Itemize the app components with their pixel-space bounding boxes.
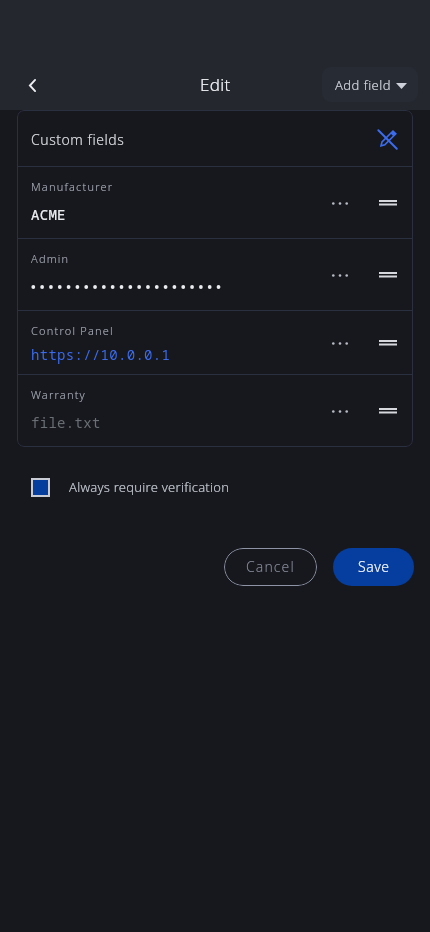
button[interactable]: Manufacturer [17, 167, 413, 238]
button[interactable]: More options [323, 394, 357, 428]
button[interactable]: Always require verification [17, 468, 230, 506]
staticText: Admin [31, 251, 70, 266]
staticText: Edit [200, 73, 231, 96]
staticText: Control Panel [31, 323, 114, 338]
button[interactable]: Add field [322, 67, 418, 102]
button[interactable]: More options [323, 258, 357, 292]
button[interactable]: Admin [17, 239, 413, 310]
staticText: https://10.0.0.1 [31, 345, 171, 364]
button[interactable]: Reorder [371, 394, 405, 428]
staticText: Warranty [31, 387, 86, 402]
button[interactable]: More options [323, 186, 357, 220]
button[interactable]: Control Panel [17, 311, 413, 374]
staticText: Manufacturer [31, 179, 114, 194]
button[interactable]: Reorder [371, 326, 405, 360]
button[interactable]: Reorder [371, 258, 405, 292]
staticText: Cancel [246, 557, 295, 576]
button[interactable]: Back [13, 66, 51, 104]
staticText: Always require verification [69, 478, 230, 496]
button[interactable]: Warranty [17, 375, 413, 447]
staticText: Add field [335, 76, 391, 94]
button[interactable]: Reorder [371, 186, 405, 220]
button[interactable]: Cancel [224, 548, 317, 586]
button[interactable]: Save [333, 548, 414, 586]
button[interactable]: More options [323, 326, 357, 360]
staticText: Save [358, 557, 390, 576]
staticText: file.txt [31, 413, 101, 432]
staticText: Custom fields [31, 130, 125, 149]
button[interactable]: Stop editing [369, 122, 403, 156]
staticText: ACME [31, 205, 66, 224]
